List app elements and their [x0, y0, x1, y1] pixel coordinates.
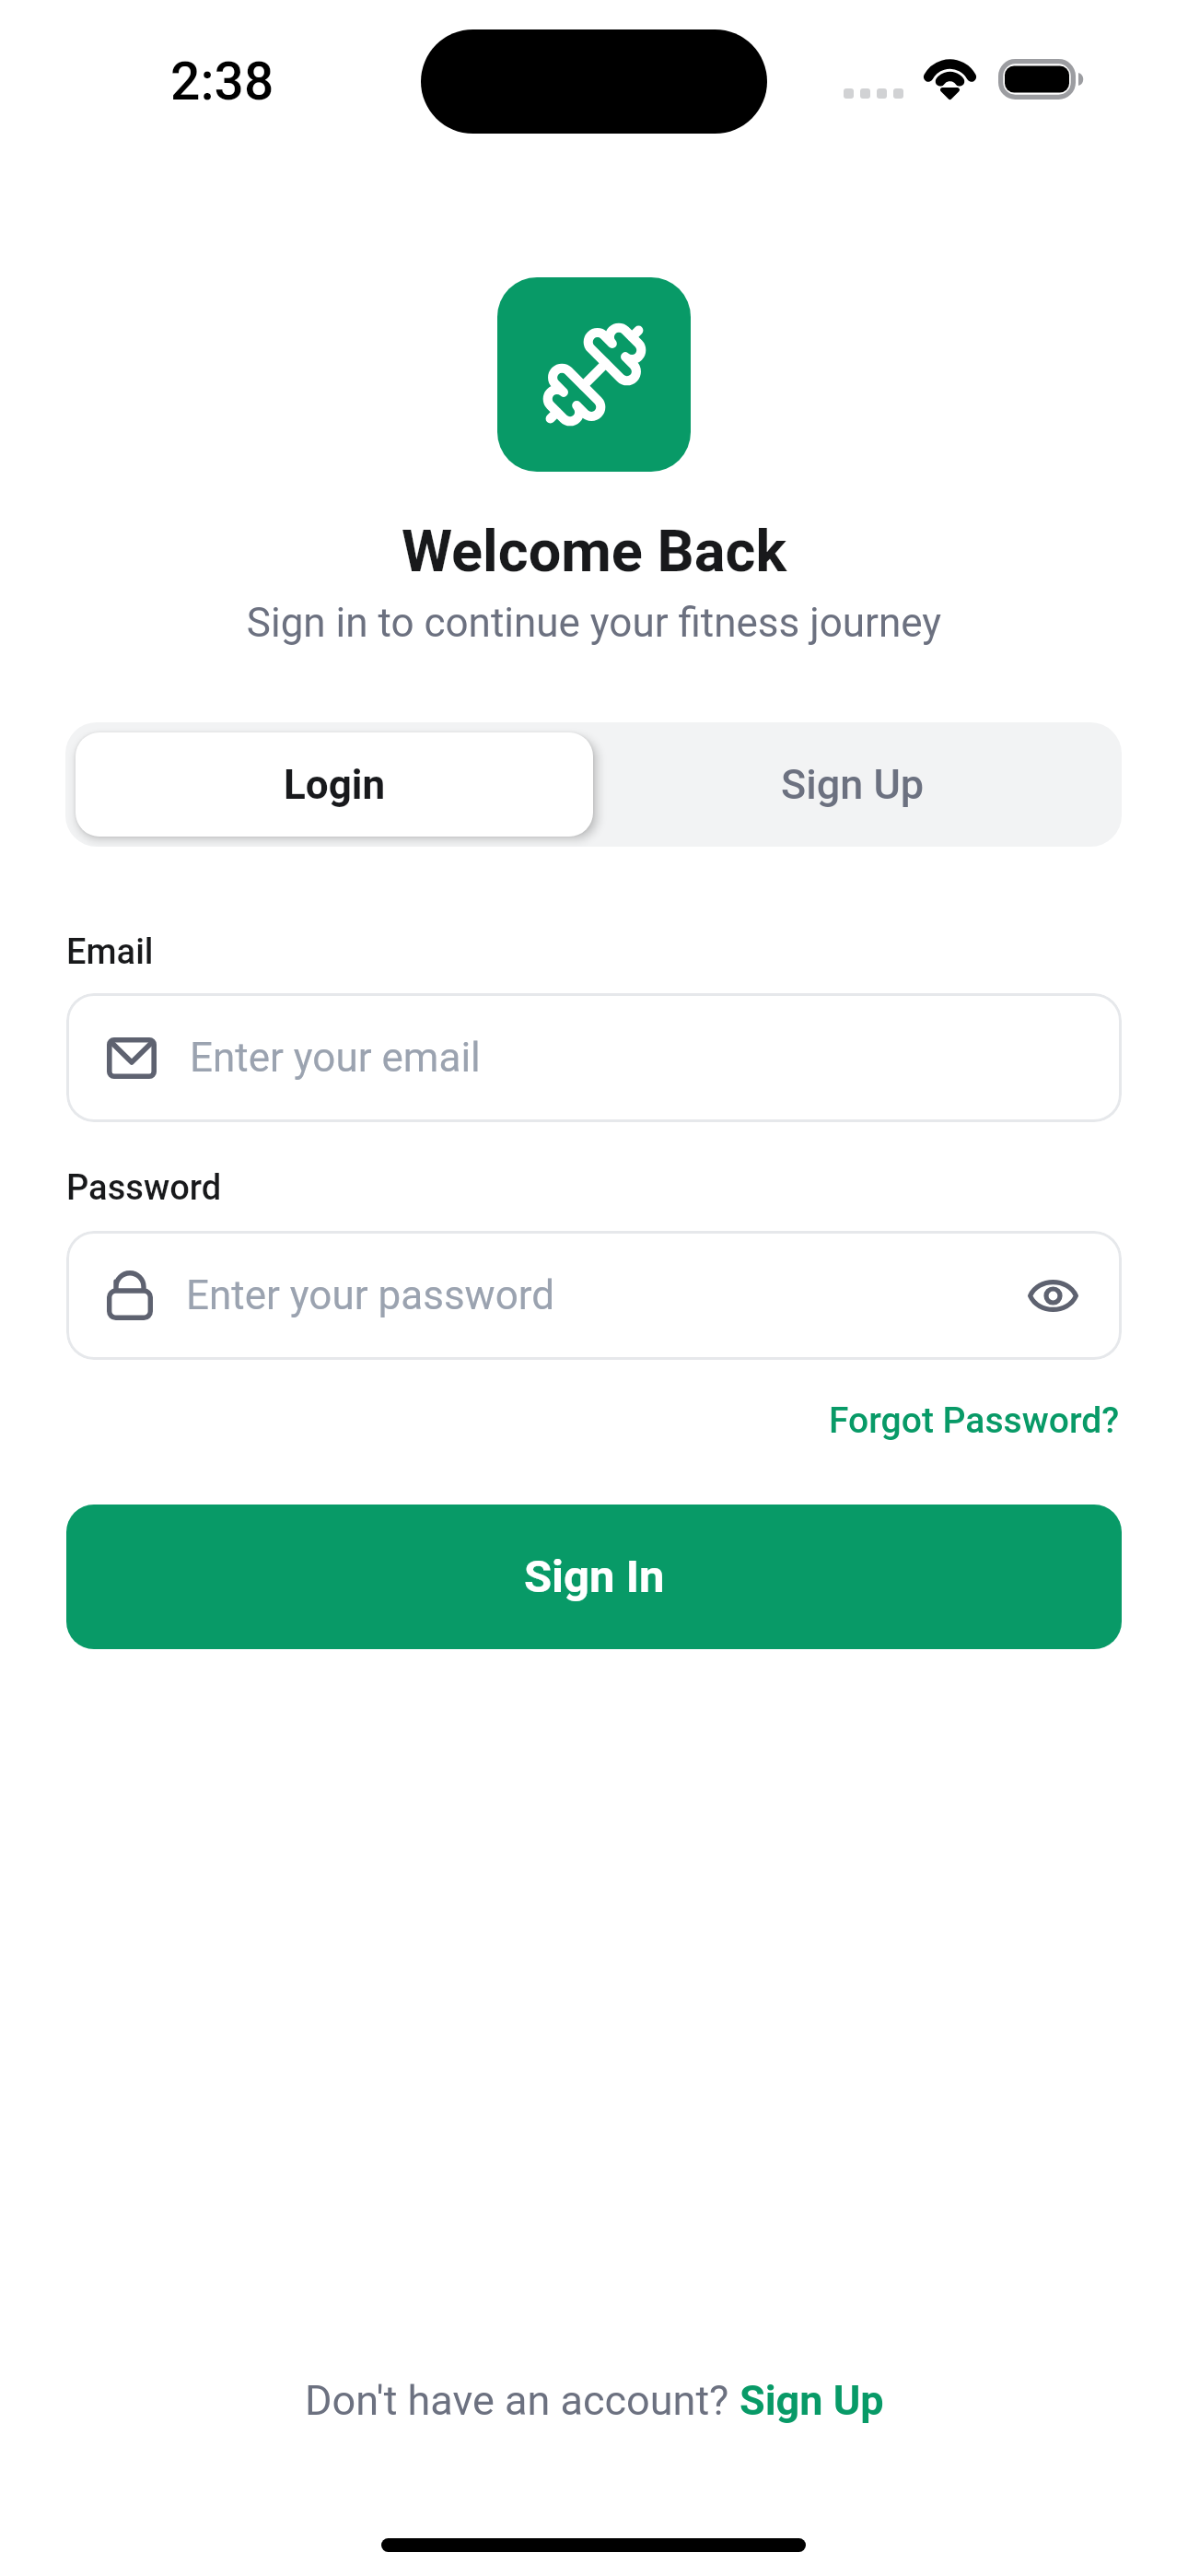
staticText: Enter your email [190, 1034, 1085, 1082]
staticText: Login [284, 761, 386, 809]
button[interactable]: Show password [1020, 1263, 1085, 1328]
staticText: Sign Up [781, 760, 925, 809]
staticText: Forgot Password? [829, 1399, 1120, 1442]
button[interactable]: Sign Up [593, 732, 1112, 837]
button[interactable]: Forgot Password? [829, 1399, 1120, 1442]
button[interactable]: Sign Up [740, 2376, 884, 2425]
staticText: 2:38 [170, 51, 274, 112]
button[interactable]: Enter your password [66, 1231, 1122, 1360]
staticText: Sign in to continue your fitness journey [0, 599, 1188, 647]
button[interactable]: Sign In [66, 1505, 1122, 1649]
button[interactable]: Enter your email [66, 993, 1122, 1122]
staticText: Sign In [524, 1551, 665, 1603]
staticText: Sign Up [740, 2376, 884, 2425]
staticText: Email [66, 931, 154, 973]
staticText: Password [66, 1167, 222, 1209]
staticText: Welcome Back [0, 518, 1188, 586]
staticText: Don't have an account? [305, 2376, 740, 2425]
button[interactable]: Login [76, 732, 593, 837]
staticText: Enter your password [186, 1271, 1020, 1319]
